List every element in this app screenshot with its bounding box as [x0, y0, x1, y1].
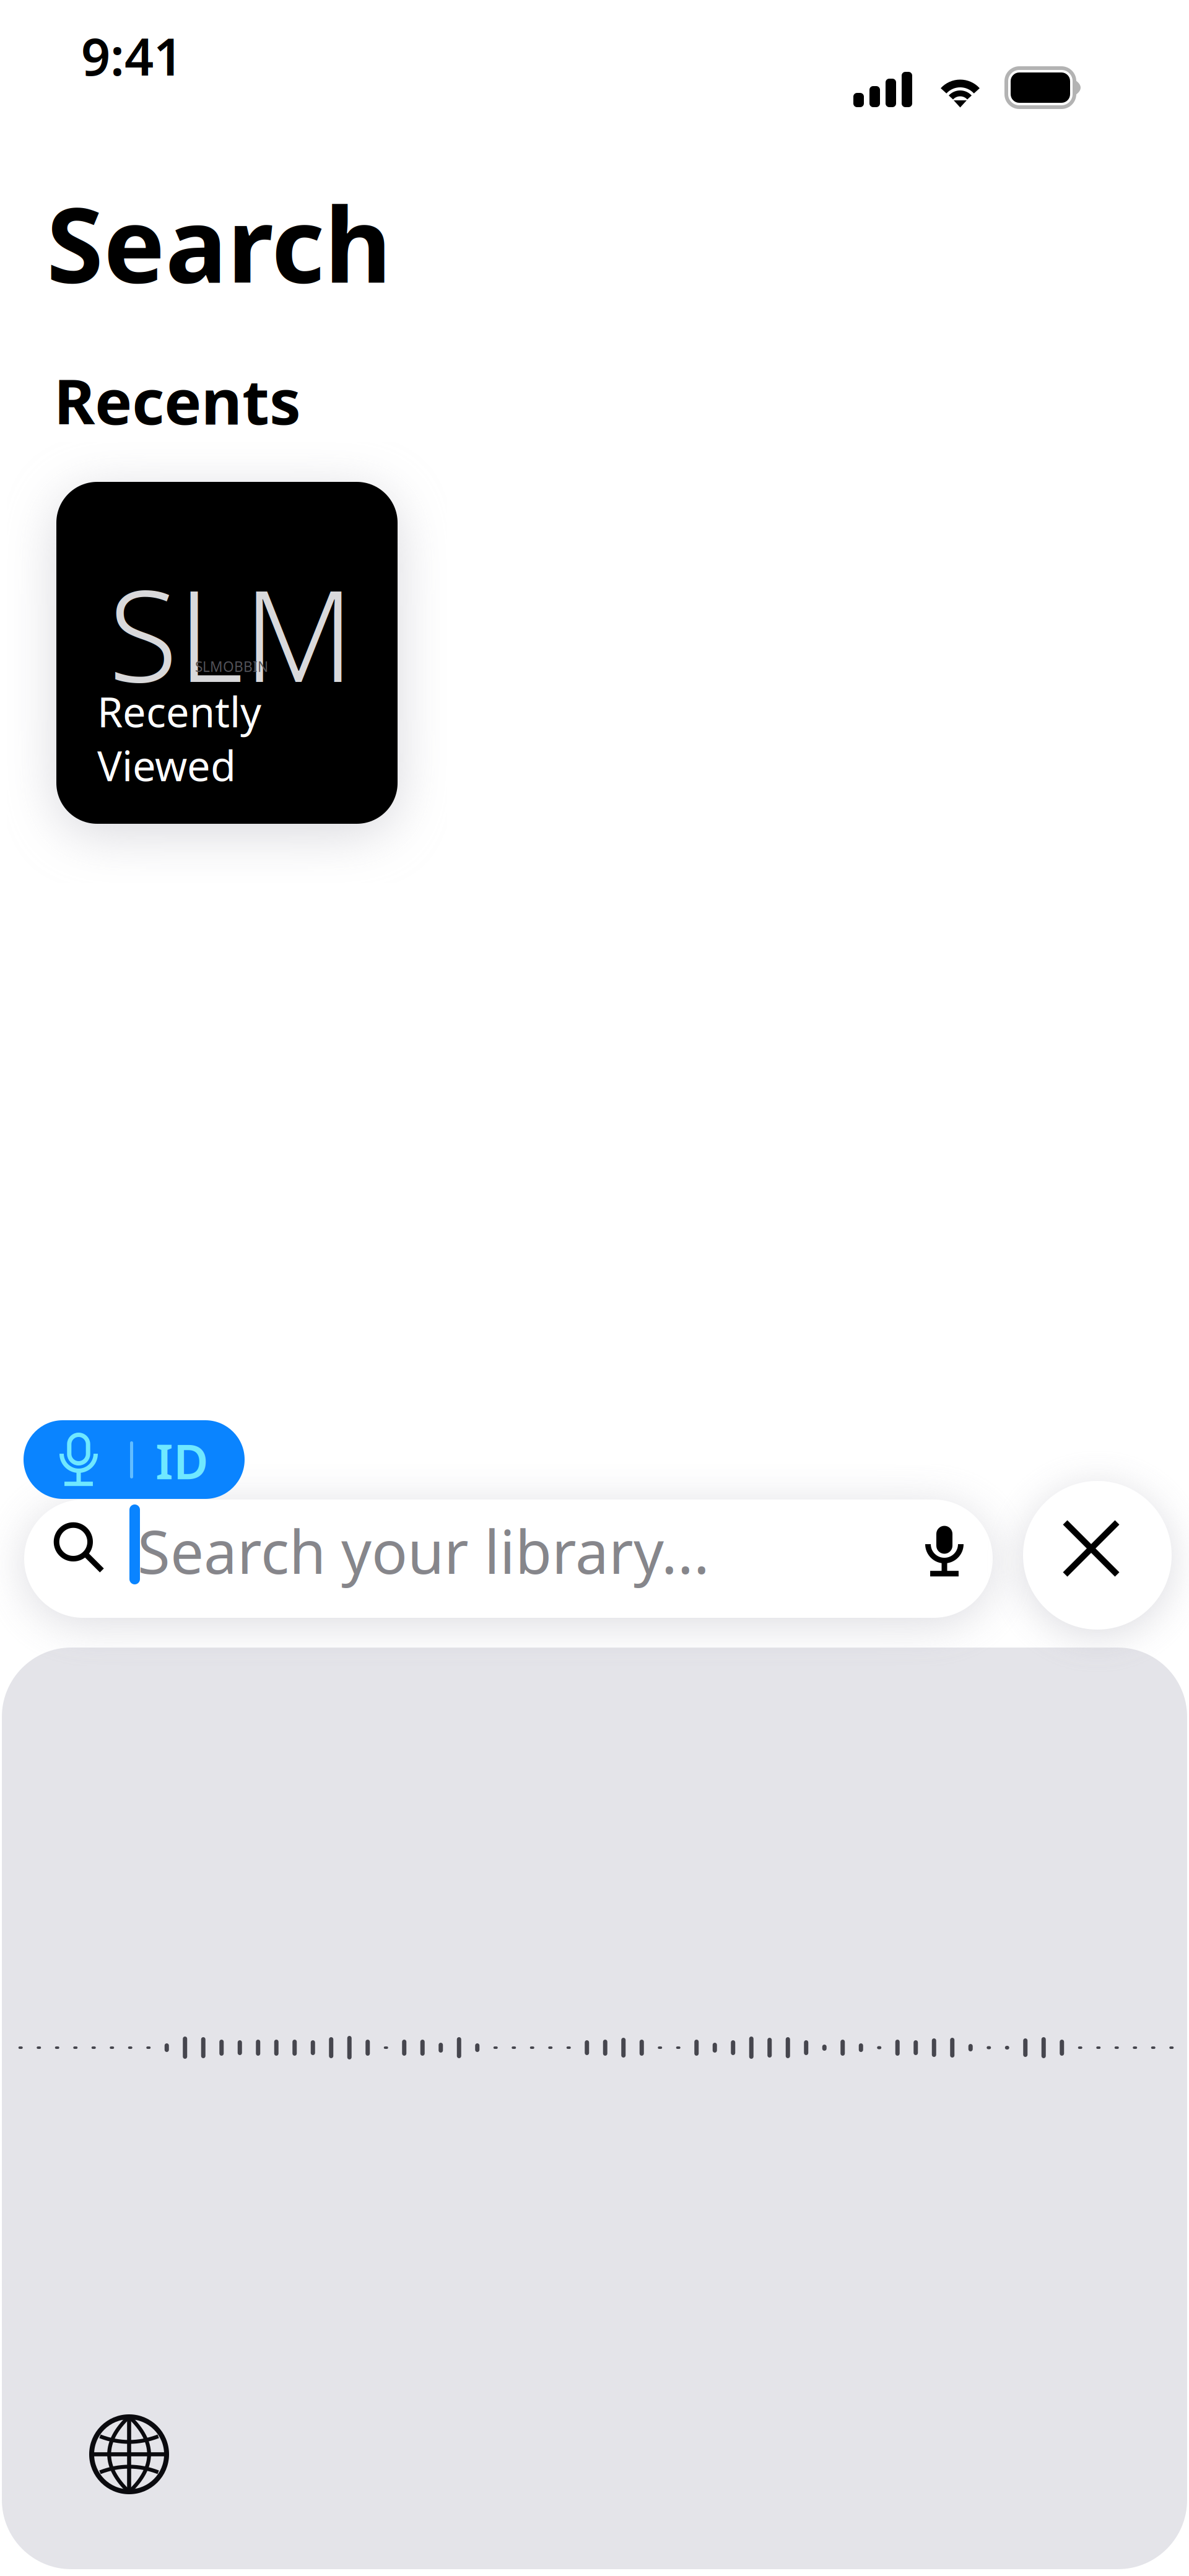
- staticText: 9:41: [81, 22, 183, 90]
- staticText: Search your library...: [137, 1511, 710, 1590]
- staticText: SLM: [108, 548, 354, 717]
- button[interactable]: Close search: [1023, 1481, 1172, 1630]
- button[interactable]: Switch keyboard: [89, 2414, 169, 2494]
- button[interactable]: SLM: [56, 482, 398, 824]
- button[interactable]: Identify audio: [24, 1420, 245, 1499]
- staticText: Viewed: [97, 738, 236, 792]
- staticText: Recents: [54, 359, 301, 442]
- staticText: Search: [46, 174, 391, 311]
- staticText: ID: [155, 1429, 209, 1493]
- staticText: SLMOBBIN: [195, 657, 268, 676]
- staticText: Recently: [97, 684, 261, 739]
